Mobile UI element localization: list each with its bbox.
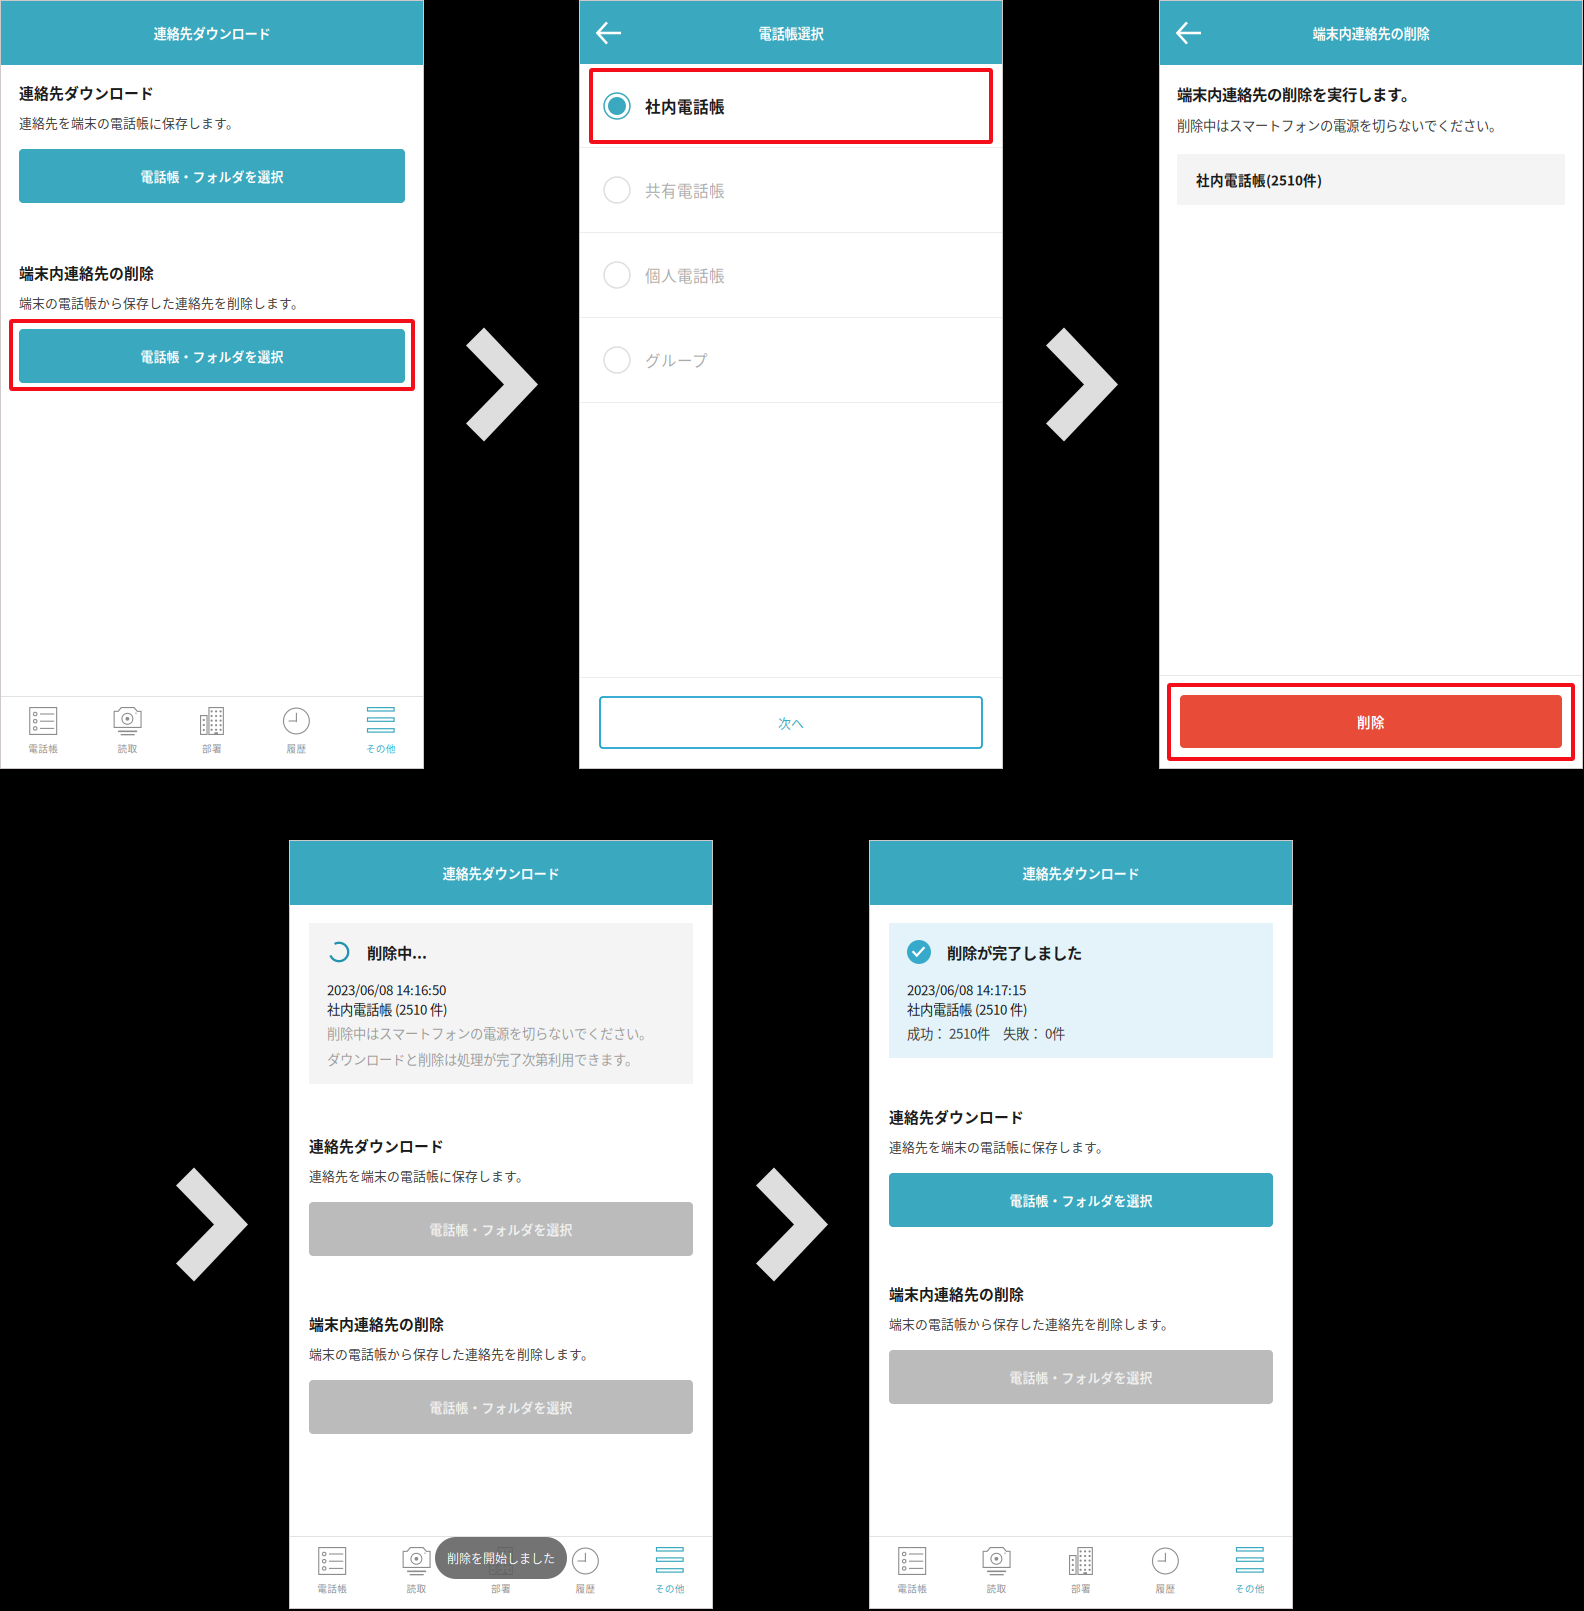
staticText: 削除 — [1357, 712, 1385, 731]
staticText: 電話帳・フォルダを選択 — [429, 1398, 572, 1416]
staticText: 端末内連絡先の削除 — [19, 262, 154, 283]
staticText: 読取 — [118, 741, 138, 755]
button[interactable]: 履歴 — [543, 1537, 628, 1608]
staticText: 電話帳 — [28, 741, 58, 755]
staticText: 電話帳・フォルダを選択 — [140, 167, 283, 185]
staticText: 部署 — [491, 1581, 511, 1595]
button[interactable]: 部署 — [170, 697, 254, 768]
button[interactable]: 電話帳・フォルダを選択 — [19, 149, 405, 203]
staticText: 次へ — [778, 713, 804, 732]
staticText: 電話帳 — [317, 1581, 347, 1595]
button[interactable]: 電話帳・フォルダを選択 — [889, 1350, 1273, 1404]
button[interactable]: 戻る — [1160, 1, 1218, 65]
staticText: 連絡先を端末の電話帳に保存します。 — [889, 1137, 1109, 1156]
staticText: 部署 — [1071, 1581, 1091, 1595]
staticText: 電話帳 — [897, 1581, 927, 1595]
staticText: 連絡先ダウンロード — [889, 1106, 1024, 1127]
staticText: 端末の電話帳から保存した連絡先を削除します。 — [889, 1314, 1174, 1333]
button[interactable]: 次へ — [600, 697, 982, 748]
button[interactable]: 削除 — [1180, 695, 1562, 748]
button[interactable]: 履歴 — [254, 697, 339, 768]
button[interactable]: 共有電話帳 — [580, 148, 1002, 232]
staticText: 読取 — [407, 1581, 427, 1595]
staticText: 社内電話帳 (2510 件) — [907, 999, 1027, 1019]
staticText: 削除中はスマートフォンの電源を切らないでください。 — [1177, 115, 1502, 135]
button[interactable]: 社内電話帳 — [580, 64, 1002, 148]
staticText: 削除を開始しました — [447, 1549, 555, 1567]
staticText: 2023/06/08 14:17:15 — [907, 980, 1026, 999]
staticText: 連絡先ダウンロード — [153, 23, 270, 42]
button[interactable]: その他 — [339, 697, 423, 768]
button[interactable]: 読取 — [954, 1537, 1039, 1608]
button[interactable]: 部署 — [459, 1537, 543, 1608]
staticText: 連絡先を端末の電話帳に保存します。 — [309, 1166, 529, 1185]
staticText: 電話帳・フォルダを選択 — [140, 347, 283, 365]
button[interactable]: 読取 — [85, 697, 170, 768]
button[interactable]: 電話帳 — [1, 697, 85, 768]
button[interactable]: 電話帳 — [290, 1537, 374, 1608]
staticText: 社内電話帳 (2510 件) — [327, 999, 447, 1019]
staticText: 2023/06/08 14:16:50 — [327, 980, 446, 999]
staticText: 部署 — [202, 741, 222, 755]
staticText: 連絡先ダウンロード — [19, 82, 154, 103]
button[interactable]: 戻る — [580, 1, 638, 65]
button[interactable]: グループ — [580, 318, 1002, 402]
staticText: 履歴 — [286, 741, 306, 755]
staticText: 端末の電話帳から保存した連絡先を削除します。 — [309, 1344, 594, 1363]
button[interactable]: 個人電話帳 — [580, 233, 1002, 317]
staticText: 電話帳選択 — [758, 23, 823, 42]
staticText: 連絡先ダウンロード — [309, 1135, 444, 1156]
staticText: 削除中... — [367, 941, 427, 963]
staticText: その他 — [1235, 1581, 1265, 1595]
staticText: 端末の電話帳から保存した連絡先を削除します。 — [19, 293, 304, 312]
staticText: 個人電話帳 — [645, 264, 725, 286]
staticText: 電話帳・フォルダを選択 — [429, 1220, 572, 1238]
staticText: 端末内連絡先の削除 — [1312, 23, 1429, 42]
staticText: 端末内連絡先の削除 — [889, 1283, 1024, 1304]
staticText: 連絡先を端末の電話帳に保存します。 — [19, 113, 239, 132]
staticText: 端末内連絡先の削除を実行します。 — [1177, 82, 1416, 105]
button[interactable]: 履歴 — [1123, 1537, 1208, 1608]
staticText: 社内電話帳 — [645, 95, 725, 117]
staticText: 履歴 — [1155, 1581, 1175, 1595]
button[interactable]: その他 — [628, 1537, 712, 1608]
staticText: 読取 — [987, 1581, 1007, 1595]
staticText: 連絡先ダウンロード — [1022, 863, 1139, 882]
staticText: その他 — [366, 741, 396, 755]
staticText: 社内電話帳(2510件) — [1196, 170, 1322, 189]
staticText: グループ — [645, 349, 708, 371]
button[interactable]: 電話帳・フォルダを選択 — [889, 1173, 1273, 1227]
button[interactable]: 電話帳 — [870, 1537, 954, 1608]
button[interactable]: その他 — [1208, 1537, 1292, 1608]
staticText: 端末内連絡先の削除 — [309, 1313, 444, 1334]
staticText: 成功： 2510件 失敗： 0件 — [907, 1023, 1065, 1043]
staticText: 削除が完了しました — [947, 941, 1082, 963]
staticText: その他 — [655, 1581, 685, 1595]
staticText: 履歴 — [575, 1581, 595, 1595]
staticText: 電話帳・フォルダを選択 — [1009, 1191, 1152, 1209]
button[interactable]: 読取 — [374, 1537, 459, 1608]
staticText: 共有電話帳 — [645, 179, 725, 201]
button[interactable]: 電話帳・フォルダを選択 — [309, 1202, 693, 1256]
button[interactable]: 部署 — [1039, 1537, 1123, 1608]
staticText: 削除中はスマートフォンの電源を切らないでください。 — [327, 1023, 652, 1043]
button[interactable]: 電話帳・フォルダを選択 — [19, 329, 405, 383]
staticText: 連絡先ダウンロード — [442, 863, 559, 882]
staticText: ダウンロードと削除は処理が完了次第利用できます。 — [327, 1049, 638, 1069]
staticText: 電話帳・フォルダを選択 — [1009, 1368, 1152, 1386]
button[interactable]: 電話帳・フォルダを選択 — [309, 1380, 693, 1434]
